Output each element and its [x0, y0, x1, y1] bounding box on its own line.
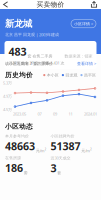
staticText: 11 [68, 111, 72, 116]
staticText: 5.3万 [3, 80, 12, 85]
staticText: 51387 [50, 139, 80, 153]
staticText: 近30天成交 27 套 · 带看 1,431 次 [8, 60, 64, 66]
staticText: 历史均价 [5, 71, 33, 79]
staticText: 小区详情 > [74, 21, 93, 26]
staticText: 查看详情 > [77, 61, 96, 66]
staticText: 近30天成交 [50, 155, 70, 161]
staticText: 2023.05 [13, 111, 26, 116]
staticText: 3 [50, 161, 56, 175]
staticText: 在售房源 [5, 155, 21, 160]
staticText: 09 [53, 111, 57, 116]
staticText: 元/m² [81, 148, 91, 153]
staticText: 4.9万 [3, 93, 12, 99]
staticText: 483 [8, 44, 26, 59]
button[interactable]: 小区详情 > [71, 20, 96, 28]
staticText: 回龙观 [65, 73, 77, 77]
button[interactable]: Back [0, 0, 11, 9]
staticText: 4.5万 [3, 107, 12, 112]
staticText: 本月参考均价 [5, 134, 29, 139]
staticText: 186 [5, 161, 23, 175]
staticText: 套 [24, 170, 28, 175]
staticText: 小区挂牌均价 [50, 134, 74, 139]
staticText: 数据来源：链家 [64, 54, 92, 59]
staticText: 套 [26, 54, 31, 59]
staticText: 买卖物价 [36, 0, 64, 9]
staticText: 昌平区 [84, 73, 96, 77]
staticText: 新龙城 [5, 18, 32, 29]
button[interactable]: Share [87, 0, 101, 9]
staticText: 元/m² [36, 148, 46, 153]
staticText: 小区动态 [5, 122, 33, 131]
staticText: 07 [37, 111, 41, 116]
button[interactable]: 该小区近期有 7 套房源降价 [0, 59, 101, 68]
staticText: 在售二手房 [31, 54, 52, 59]
staticText: 本小区 [47, 73, 59, 77]
staticText: 48663 [5, 139, 35, 153]
staticText: 套 [57, 170, 61, 175]
staticText: 北京 昌平 回龙观 | 2003年建成 [5, 32, 59, 37]
staticText: 该小区近期有 7 套房源降价 [5, 61, 53, 66]
staticText: 2024.01 [84, 111, 97, 116]
